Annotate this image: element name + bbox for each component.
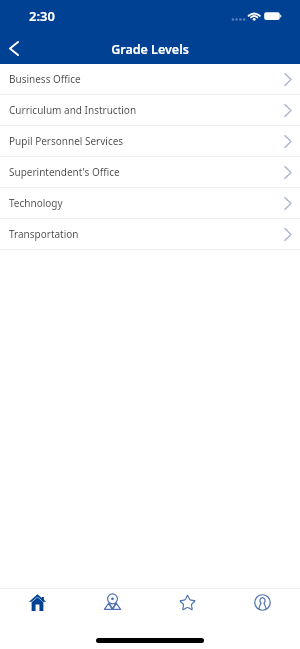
staticText: Superintendent's Office — [9, 165, 120, 179]
button[interactable]: Technology — [0, 188, 300, 218]
button[interactable]: Profile — [225, 589, 300, 616]
button[interactable]: Business Office — [0, 64, 300, 94]
button[interactable]: Transportation — [0, 219, 300, 249]
staticText: Technology — [9, 196, 63, 210]
button[interactable]: Superintendent's Office — [0, 157, 300, 187]
staticText: Curriculum and Instruction — [9, 103, 137, 117]
button[interactable]: Curriculum and Instruction — [0, 95, 300, 125]
button[interactable]: Back — [0, 32, 28, 64]
staticText: Grade Levels — [0, 41, 300, 58]
button[interactable]: Pupil Personnel Services — [0, 126, 300, 156]
staticText: 2:30 — [29, 7, 55, 25]
staticText: Pupil Personnel Services — [9, 134, 124, 148]
button[interactable]: Home — [0, 589, 75, 616]
button[interactable]: Locations — [75, 589, 150, 616]
staticText: Business Office — [9, 72, 81, 86]
button[interactable]: Favorites — [150, 589, 225, 616]
staticText: Transportation — [9, 227, 79, 241]
